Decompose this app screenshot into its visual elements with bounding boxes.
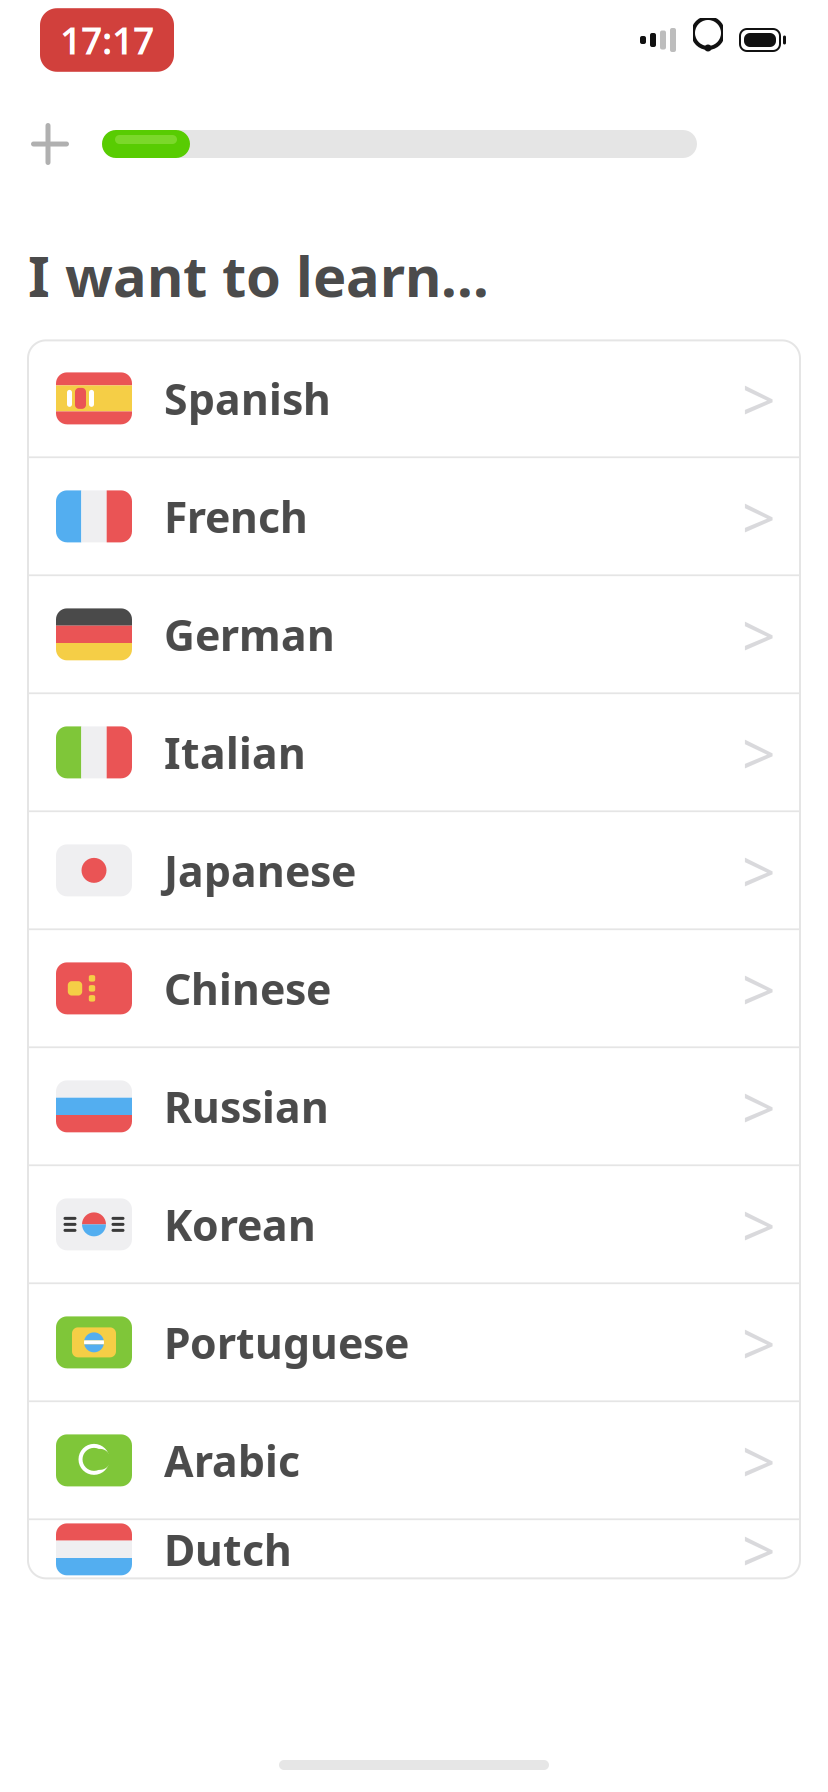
staticText: I want to learn... xyxy=(28,238,489,312)
staticText: Japanese xyxy=(164,842,356,899)
button[interactable]: French xyxy=(28,458,800,574)
staticText: > xyxy=(742,1510,776,1588)
staticText: > xyxy=(742,949,776,1027)
button[interactable]: Italian xyxy=(28,694,800,810)
button[interactable]: Back xyxy=(22,116,88,172)
staticText: > xyxy=(742,831,776,909)
button[interactable]: Russian xyxy=(28,1048,800,1164)
staticText: > xyxy=(742,1067,776,1145)
staticText: Korean xyxy=(164,1196,316,1253)
staticText: > xyxy=(742,1303,776,1381)
button[interactable]: Chinese xyxy=(28,930,800,1046)
staticText: Arabic xyxy=(164,1432,300,1489)
staticText: > xyxy=(742,359,776,437)
staticText: > xyxy=(742,1185,776,1263)
button[interactable]: Arabic xyxy=(28,1402,800,1518)
button[interactable]: Spanish xyxy=(28,340,800,456)
staticText: French xyxy=(164,488,308,545)
staticText: Spanish xyxy=(164,370,331,427)
staticText: Russian xyxy=(164,1078,329,1135)
staticText: 17:17 xyxy=(60,15,154,65)
button[interactable]: Japanese xyxy=(28,812,800,928)
button[interactable]: German xyxy=(28,576,800,692)
staticText: > xyxy=(742,595,776,673)
staticText: > xyxy=(742,477,776,555)
staticText: Chinese xyxy=(164,960,331,1017)
staticText: Dutch xyxy=(164,1521,292,1578)
staticText: > xyxy=(742,713,776,791)
button[interactable]: Portuguese xyxy=(28,1284,800,1400)
staticText: Italian xyxy=(164,724,306,781)
staticText: Portuguese xyxy=(164,1314,409,1371)
staticText: German xyxy=(164,606,335,663)
button[interactable]: Korean xyxy=(28,1166,800,1282)
staticText: > xyxy=(742,1421,776,1499)
button[interactable]: Dutch xyxy=(28,1520,800,1578)
